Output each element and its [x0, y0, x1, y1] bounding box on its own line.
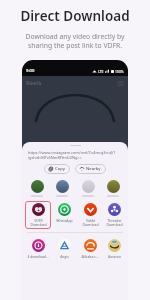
staticText: WhatsApp [56, 218, 73, 223]
staticText: https://www.instagram.com/reel/Cv4mcg3ru… [28, 150, 122, 160]
staticText: Nearby [86, 166, 101, 172]
button[interactable] [103, 180, 123, 197]
button[interactable]: Alibaba.c… [77, 237, 103, 261]
button[interactable]: Camera [117, 80, 124, 87]
staticText: Download any video directly by sharing t… [25, 32, 125, 50]
button[interactable]: Viddit Download [77, 201, 103, 229]
staticText: 4 download… [27, 254, 49, 259]
staticText: Direct Download [20, 7, 130, 25]
button[interactable]: Amazon [103, 237, 125, 261]
staticText: Threader Download [106, 218, 123, 227]
button[interactable] [27, 180, 47, 197]
button[interactable]: Copy [44, 164, 70, 174]
staticText: Alibaba.c… [81, 254, 99, 259]
staticText: Copy [55, 166, 65, 172]
staticText: 9:00 [26, 68, 35, 74]
button[interactable] [78, 180, 98, 197]
staticText: Amazon [108, 254, 121, 259]
staticText: Aegis [60, 254, 69, 259]
button[interactable]: Threader Download [103, 201, 125, 229]
staticText: Reels [26, 79, 42, 87]
button[interactable]: 4 download… [25, 237, 51, 261]
button[interactable]: WhatsApp [51, 201, 77, 225]
button[interactable]: VDFR Download [25, 201, 51, 229]
staticText: VDFR Download [30, 218, 47, 227]
button[interactable]: Nearby [75, 164, 106, 174]
staticText: Viddit Download [82, 218, 99, 227]
button[interactable] [52, 180, 72, 197]
button[interactable]: Aegis [51, 237, 77, 261]
staticText: LTE [98, 69, 104, 74]
staticText: 100% [115, 69, 124, 74]
